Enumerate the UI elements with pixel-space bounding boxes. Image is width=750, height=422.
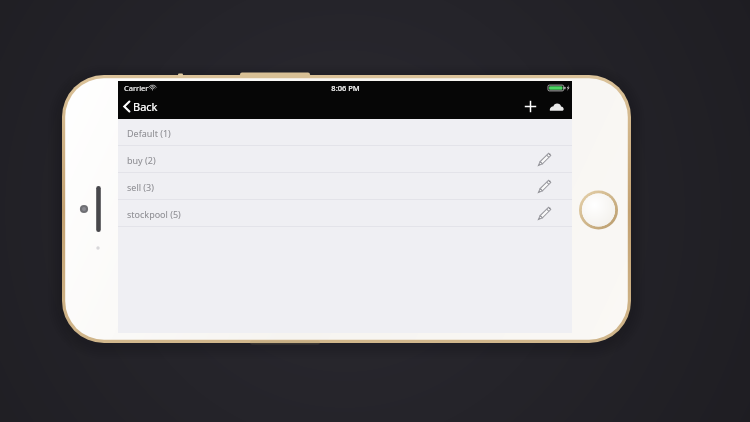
staticText: Carrier — [124, 83, 149, 93]
button[interactable]: Add list — [519, 97, 542, 116]
button[interactable]: Edit buy (2) — [535, 151, 553, 169]
staticText: sell (3) — [127, 181, 154, 193]
button[interactable]: Sync to cloud — [546, 98, 572, 116]
staticText: buy (2) — [127, 154, 156, 166]
staticText: stockpool (5) — [127, 208, 181, 220]
button[interactable]: sell (3) — [118, 173, 572, 200]
staticText: Back — [133, 99, 158, 114]
button[interactable]: Edit sell (3) — [535, 178, 553, 196]
button[interactable]: buy (2) — [118, 146, 572, 173]
button[interactable]: stockpool (5) — [118, 200, 572, 227]
staticText: Default (1) — [127, 127, 171, 139]
button[interactable]: Edit stockpool (5) — [535, 205, 553, 223]
button[interactable]: Back — [118, 96, 166, 117]
button[interactable]: Default (1) — [118, 119, 572, 146]
staticText: 8:06 PM — [331, 83, 360, 93]
